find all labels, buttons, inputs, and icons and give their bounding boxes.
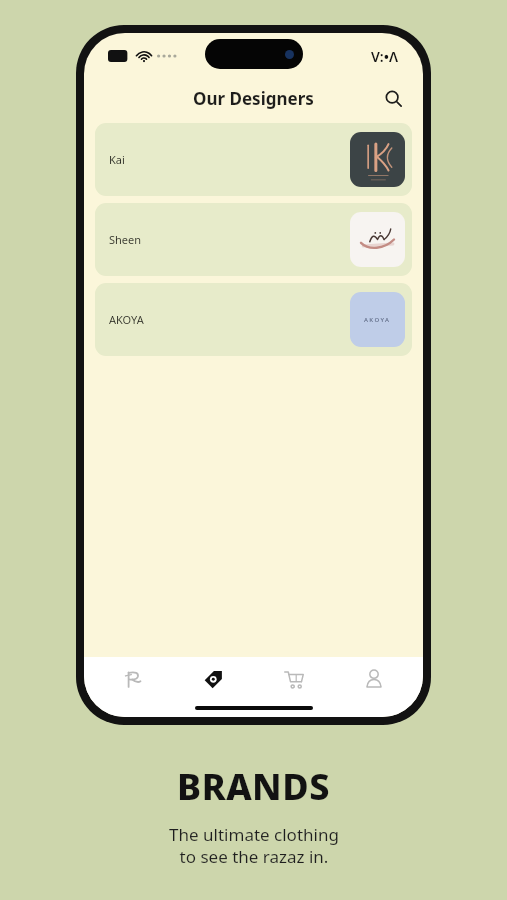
button[interactable]: Brands <box>182 657 244 701</box>
staticText: Sheen <box>109 232 142 247</box>
button[interactable]: AKOYA <box>95 283 412 356</box>
button[interactable]: Sheen <box>95 203 412 276</box>
staticText: AKOYA <box>364 316 391 324</box>
staticText: V:•Λ <box>371 47 399 66</box>
button[interactable]: Home <box>102 657 164 701</box>
staticText: The ultimate clothing to see the razaz i… <box>169 823 339 868</box>
button[interactable]: Search <box>377 82 409 114</box>
button[interactable]: Kai <box>95 123 412 196</box>
staticText: AKOYA <box>109 312 144 327</box>
button[interactable]: Profile <box>343 657 405 701</box>
staticText: Our Designers <box>193 87 314 110</box>
staticText: BRANDS <box>177 762 330 811</box>
button[interactable]: Cart <box>263 657 325 701</box>
staticText: Kai <box>109 152 125 167</box>
